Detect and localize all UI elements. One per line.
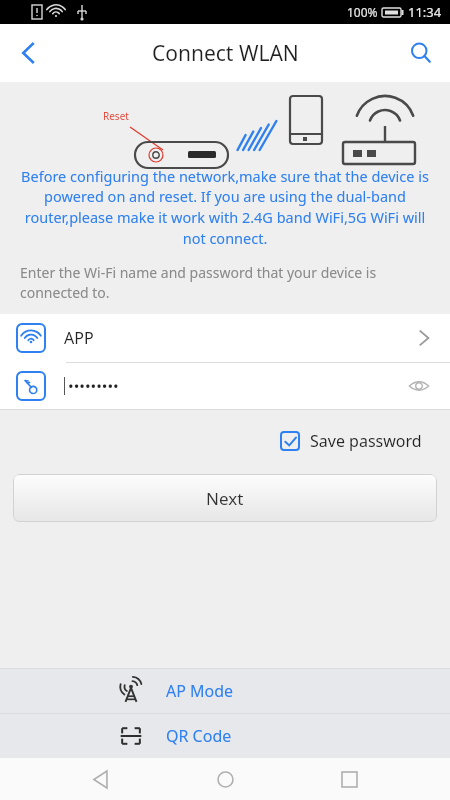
staticText: Before configuring the network,make sure…: [20, 166, 430, 249]
staticText: Reset: [103, 109, 129, 123]
button[interactable]: Save password: [280, 430, 422, 452]
staticText: QR Code: [166, 725, 232, 747]
button[interactable]: Back: [0, 24, 58, 82]
staticText: Next: [206, 487, 244, 510]
button[interactable]: Recents: [326, 758, 372, 800]
staticText: Connect WLAN: [152, 39, 299, 68]
button[interactable]: QR Code: [0, 714, 450, 758]
button[interactable]: •••••••••: [0, 363, 450, 409]
staticText: 100%: [347, 4, 378, 20]
button[interactable]: Next: [13, 474, 437, 522]
staticText: 11:34: [408, 3, 442, 21]
button[interactable]: Show password: [404, 371, 434, 401]
staticText: AP Mode: [166, 680, 234, 702]
button[interactable]: Home: [202, 758, 248, 800]
staticText: Save password: [310, 430, 422, 452]
staticText: Enter the Wi-Fi name and password that y…: [20, 263, 428, 302]
staticText: APP: [64, 327, 94, 349]
button[interactable]: APP: [0, 314, 450, 362]
staticText: •••••••••: [68, 376, 119, 396]
button[interactable]: Back: [78, 758, 124, 800]
button[interactable]: AP Mode: [0, 669, 450, 713]
button[interactable]: Search: [392, 24, 450, 82]
